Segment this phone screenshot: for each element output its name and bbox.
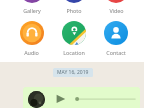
staticText: Contact bbox=[106, 49, 126, 56]
staticText: Video bbox=[109, 7, 124, 14]
staticText: Audio bbox=[24, 49, 39, 56]
staticText: MAY 16, 2019 bbox=[57, 69, 89, 76]
button[interactable]: Audio bbox=[10, 0, 53, 24]
button[interactable]: Location bbox=[53, 0, 95, 24]
button[interactable]: Gallery bbox=[10, 0, 53, 24]
button[interactable]: Video bbox=[95, 0, 137, 24]
button[interactable]: Photo bbox=[53, 0, 95, 24]
button[interactable]: Contact bbox=[95, 0, 137, 24]
staticText: Photo bbox=[66, 7, 82, 14]
button[interactable]: Voice message bbox=[23, 87, 140, 108]
staticText: Location bbox=[63, 49, 85, 56]
staticText: Gallery bbox=[23, 7, 41, 14]
